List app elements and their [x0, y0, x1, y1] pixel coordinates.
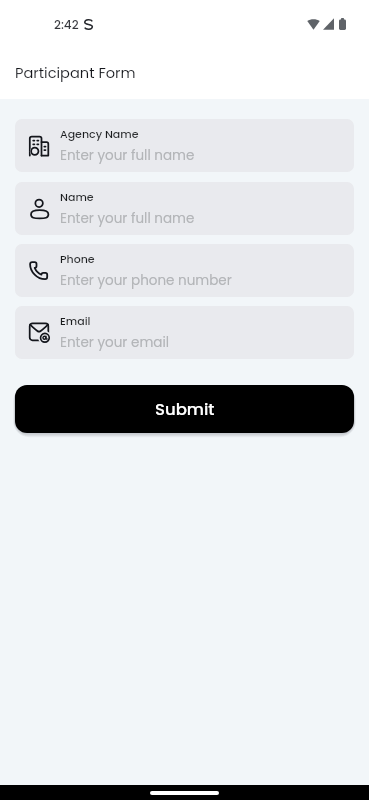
- button[interactable]: Phone: [15, 244, 354, 297]
- staticText: 2:42: [54, 16, 79, 33]
- staticText: Enter your phone number: [60, 271, 232, 290]
- staticText: Phone: [60, 251, 95, 266]
- staticText: Enter your email: [60, 333, 170, 352]
- staticText: Submit: [155, 398, 215, 421]
- staticText: Name: [60, 189, 94, 204]
- staticText: Email: [60, 313, 91, 328]
- button[interactable]: Agency Name: [15, 119, 354, 172]
- button[interactable]: Email: [15, 306, 354, 359]
- staticText: Agency Name: [60, 126, 139, 141]
- staticText: Enter your full name: [60, 146, 195, 165]
- staticText: Enter your full name: [60, 209, 195, 228]
- staticText: Participant Form: [15, 63, 136, 83]
- button[interactable]: Submit: [15, 385, 354, 433]
- button[interactable]: Name: [15, 182, 354, 235]
